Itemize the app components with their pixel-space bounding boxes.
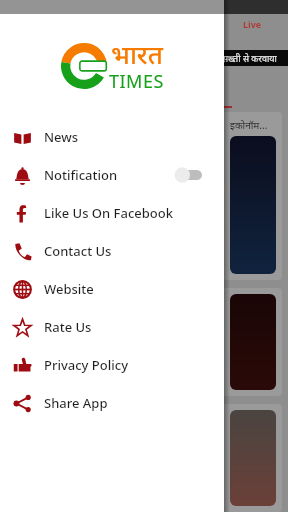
button[interactable]: Share App xyxy=(0,384,224,422)
staticText: Website xyxy=(44,280,94,298)
button[interactable] xyxy=(6,404,282,512)
button[interactable]: इकोनॉम... xyxy=(6,112,282,280)
button[interactable]: Contact Us xyxy=(0,232,224,270)
staticText: इकोनॉम... xyxy=(230,118,268,132)
staticText: Notification xyxy=(44,166,118,184)
staticText: Contact Us xyxy=(44,242,112,260)
staticText: भारत xyxy=(111,36,163,71)
button[interactable]: News xyxy=(0,118,224,156)
button[interactable]: Rate Us xyxy=(0,308,224,346)
staticText: Share App xyxy=(44,394,108,412)
button[interactable] xyxy=(6,288,282,396)
staticText: News xyxy=(44,128,79,146)
staticText: सख्ती से करवाया xyxy=(222,52,277,64)
staticText: Live xyxy=(243,18,262,30)
button[interactable]: Notification xyxy=(0,156,224,194)
staticText: TIMES xyxy=(109,69,164,94)
button[interactable]: Privacy Policy xyxy=(0,346,224,384)
button[interactable]: Notification toggle xyxy=(174,167,202,183)
button[interactable]: Website xyxy=(0,270,224,308)
staticText: Like Us On Facebook xyxy=(44,204,173,222)
staticText: Privacy Policy xyxy=(44,356,128,374)
staticText: Rate Us xyxy=(44,318,92,336)
button[interactable]: Like Us On Facebook xyxy=(0,194,224,232)
